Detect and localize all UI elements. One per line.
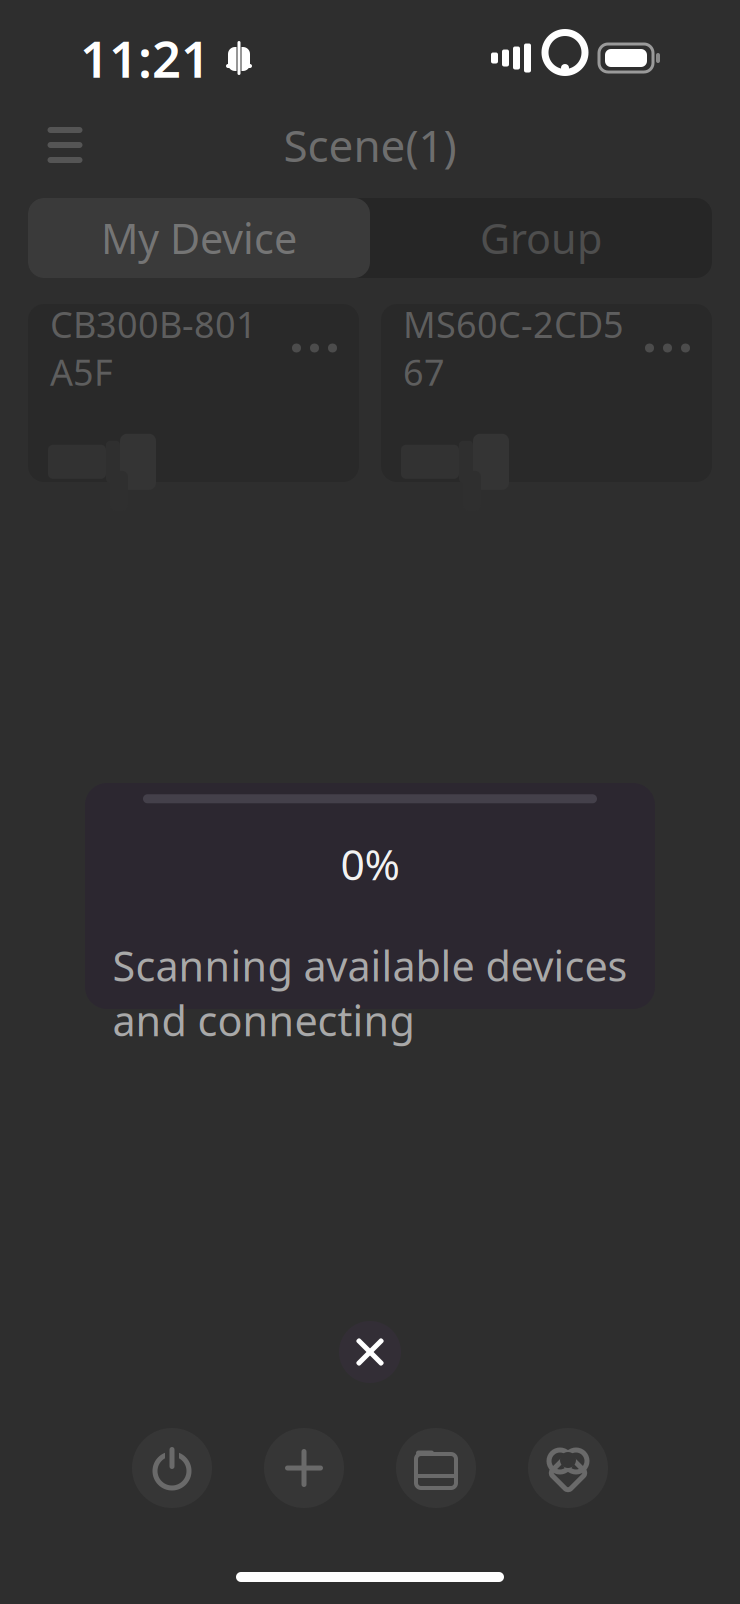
button[interactable]: My Device bbox=[28, 198, 370, 278]
staticText: MS60C-2CD567 bbox=[403, 300, 624, 396]
staticText: My Device bbox=[101, 211, 297, 265]
staticText: 11:21 bbox=[80, 24, 210, 92]
button[interactable]: MS60C-2CD567 bbox=[381, 304, 712, 482]
staticText: Group bbox=[480, 211, 602, 265]
button[interactable]: Group bbox=[370, 198, 712, 278]
button[interactable]: Menu bbox=[28, 108, 102, 182]
staticText: Scanning available devices and connectin… bbox=[112, 938, 627, 1048]
button[interactable]: Add bbox=[264, 1428, 344, 1508]
button[interactable]: Power bbox=[132, 1428, 212, 1508]
button[interactable]: CB300B-801A5F bbox=[28, 304, 359, 482]
staticText: 0% bbox=[340, 835, 399, 892]
button[interactable]: Favorites bbox=[528, 1428, 608, 1508]
button[interactable]: Files bbox=[396, 1428, 476, 1508]
staticText: Scene(1) bbox=[283, 116, 456, 174]
button[interactable]: Close bbox=[328, 1310, 412, 1394]
staticText: CB300B-801A5F bbox=[50, 300, 257, 396]
